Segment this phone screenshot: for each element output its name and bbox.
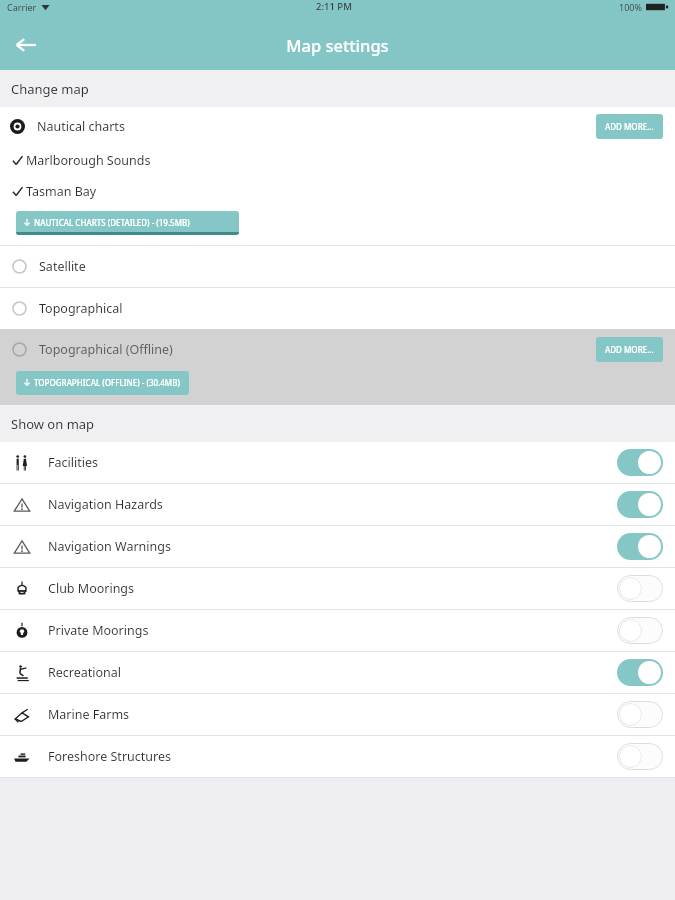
- button[interactable]: On: [617, 533, 663, 560]
- button[interactable]: Off: [617, 617, 663, 644]
- staticText: Change map: [11, 80, 89, 98]
- button[interactable]: Topographical: [0, 288, 675, 329]
- staticText: Foreshore Structures: [48, 748, 171, 765]
- button[interactable]: Club Moorings: [0, 568, 675, 609]
- button[interactable]: Recreational: [0, 652, 675, 693]
- button[interactable]: Off: [617, 575, 663, 602]
- button[interactable]: Tasman Bay: [0, 176, 675, 207]
- staticText: Marlborough Sounds: [26, 152, 151, 169]
- button[interactable]: TOPOGRAPHICAL (OFFLINE) - (30.4MB): [16, 371, 189, 395]
- button[interactable]: Marlborough Sounds: [0, 145, 675, 176]
- button[interactable]: Off: [617, 743, 663, 770]
- staticText: Navigation Hazards: [48, 496, 163, 513]
- staticText: ADD MORE...: [605, 344, 654, 355]
- staticText: Private Moorings: [48, 622, 149, 639]
- staticText: Club Moorings: [48, 580, 135, 597]
- button[interactable]: On: [617, 491, 663, 518]
- button[interactable]: NAUTICAL CHARTS (DETAILED) - (19.5MB): [16, 211, 239, 235]
- staticText: Satellite: [39, 258, 86, 275]
- button[interactable]: Facilities: [0, 442, 675, 483]
- staticText: Facilities: [48, 454, 98, 471]
- staticText: 100%: [619, 1, 642, 13]
- staticText: Topographical: [39, 300, 123, 317]
- staticText: Map settings: [286, 34, 389, 56]
- staticText: Marine Farms: [48, 706, 130, 723]
- staticText: Show on map: [11, 415, 95, 433]
- staticText: 2:11 PM: [316, 0, 352, 13]
- button[interactable]: Navigation Warnings: [0, 526, 675, 567]
- button[interactable]: Private Moorings: [0, 610, 675, 651]
- button[interactable]: Topographical (Offline): [0, 329, 675, 369]
- staticText: TOPOGRAPHICAL (OFFLINE) - (30.4MB): [34, 377, 180, 388]
- button[interactable]: Nautical charts: [0, 107, 675, 145]
- staticText: Carrier: [7, 1, 37, 13]
- button[interactable]: On: [617, 659, 663, 686]
- staticText: Nautical charts: [37, 118, 125, 135]
- staticText: Recreational: [48, 664, 122, 681]
- staticText: ADD MORE...: [605, 121, 654, 132]
- button[interactable]: Back: [6, 25, 46, 65]
- staticText: Topographical (Offline): [39, 341, 173, 358]
- button[interactable]: Navigation Hazards: [0, 484, 675, 525]
- button[interactable]: Satellite: [0, 246, 675, 287]
- button[interactable]: Off: [617, 701, 663, 728]
- staticText: Navigation Warnings: [48, 538, 171, 555]
- button[interactable]: Foreshore Structures: [0, 736, 675, 777]
- button[interactable]: ADD MORE...: [596, 114, 663, 139]
- button[interactable]: On: [617, 449, 663, 476]
- staticText: Tasman Bay: [26, 183, 97, 200]
- staticText: NAUTICAL CHARTS (DETAILED) - (19.5MB): [34, 217, 190, 228]
- button[interactable]: Marine Farms: [0, 694, 675, 735]
- button[interactable]: ADD MORE...: [596, 337, 663, 362]
